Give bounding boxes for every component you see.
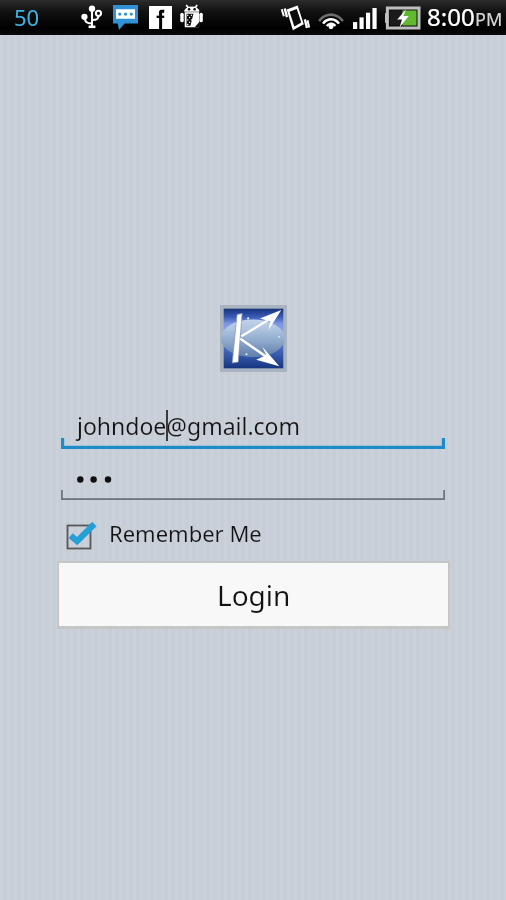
staticText: johndoe@gmail.com [77,410,301,441]
staticText: 50 [14,2,40,32]
other: Vibrate mode [278,4,308,32]
staticText: 8:00 [427,0,475,33]
other: Wi-Fi signal [316,6,346,29]
staticText: PM [475,7,503,32]
button[interactable]: Login [59,563,448,626]
other: Facebook notification [149,6,172,29]
staticText: Login [217,576,291,614]
other: USB connected [83,4,101,31]
other: App logo [220,305,287,372]
other: Android system notification [180,4,203,30]
other: New message [113,5,138,30]
other: Battery charging [385,8,419,28]
staticText: Remember Me [109,518,262,548]
other: Mobile signal strength [353,8,377,29]
button[interactable]: Password [61,462,445,500]
button[interactable]: johndoe@gmail.com [61,403,445,449]
button[interactable]: Remember Me [61,514,262,552]
